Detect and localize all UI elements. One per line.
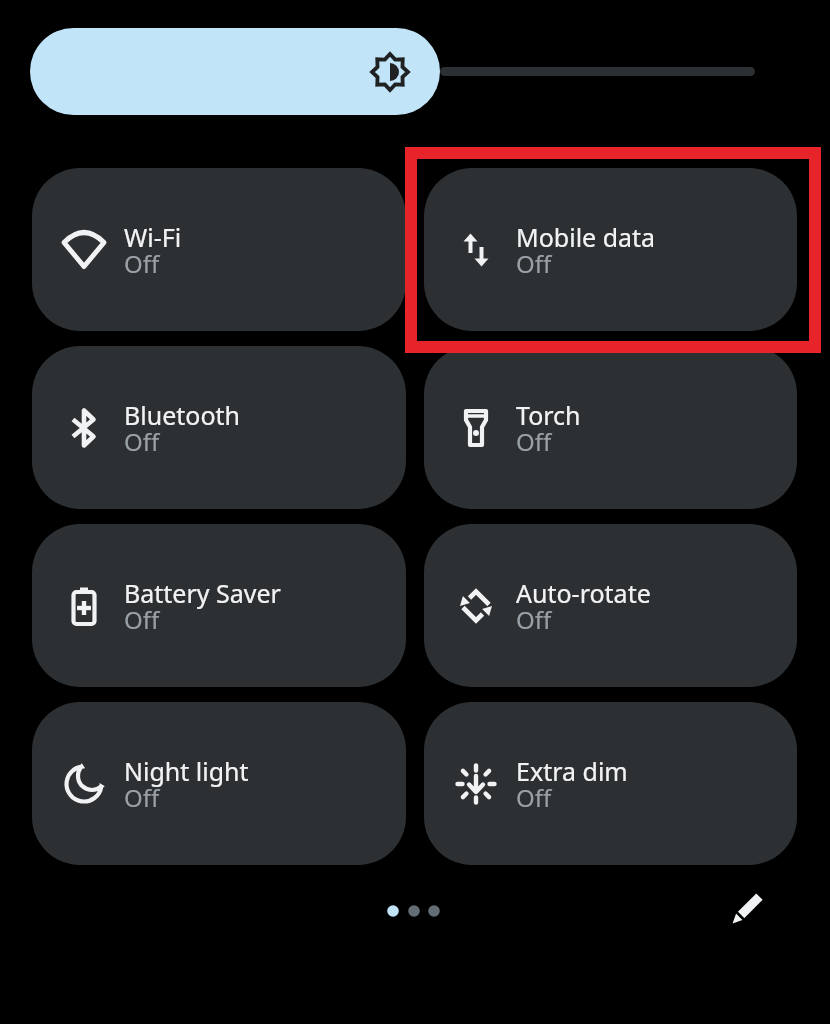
button[interactable]: Wi-Fi	[32, 168, 406, 331]
staticText: Wi-Fi	[124, 220, 182, 254]
button[interactable]: Auto-rotate	[424, 524, 797, 687]
button[interactable]: Extra dim	[424, 702, 797, 865]
button[interactable]: Bluetooth	[32, 346, 406, 509]
button[interactable]	[722, 886, 770, 934]
staticText: Auto-rotate	[516, 576, 651, 610]
button[interactable]: Battery Saver	[32, 524, 406, 687]
staticText: Off	[124, 425, 160, 458]
staticText: Torch	[516, 398, 581, 432]
staticText: Off	[516, 247, 552, 280]
staticText: Off	[124, 603, 160, 636]
button[interactable]	[30, 28, 440, 115]
staticText: Off	[124, 781, 160, 814]
button[interactable]: Mobile data	[424, 168, 797, 331]
staticText: Battery Saver	[124, 576, 281, 610]
staticText: Extra dim	[516, 754, 628, 788]
staticText: Off	[516, 603, 552, 636]
staticText: Mobile data	[516, 220, 656, 254]
staticText: Off	[516, 781, 552, 814]
staticText: Off	[516, 425, 552, 458]
button[interactable]: Torch	[424, 346, 797, 509]
staticText: Night light	[124, 754, 249, 788]
staticText: Bluetooth	[124, 398, 241, 432]
staticText: Off	[124, 247, 160, 280]
button[interactable]: Night light	[32, 702, 406, 865]
